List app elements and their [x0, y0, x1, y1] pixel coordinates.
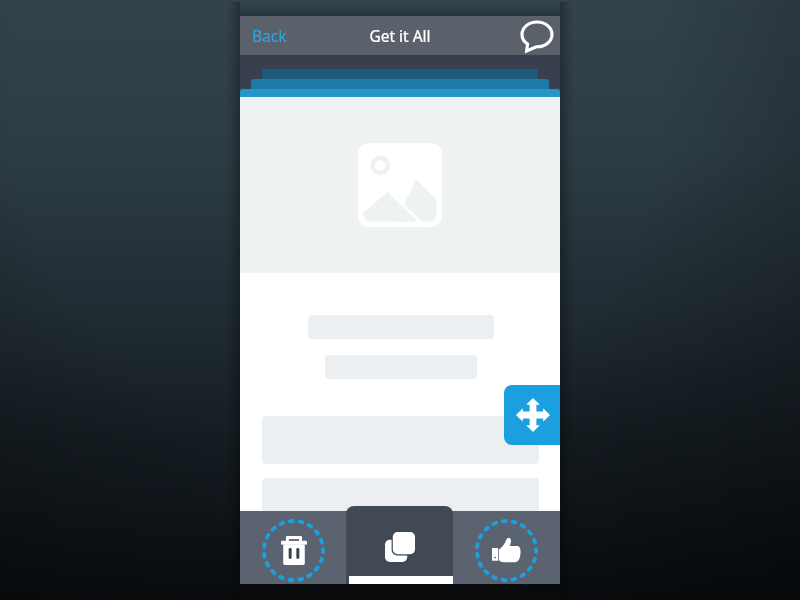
button[interactable]: Back: [240, 16, 297, 55]
button[interactable]: Copies: [346, 506, 453, 584]
staticText: Get it All: [369, 25, 431, 46]
button[interactable]: Like: [453, 511, 560, 584]
button[interactable]: Delete: [240, 511, 346, 584]
button[interactable]: Messages: [519, 18, 555, 54]
button[interactable]: Move: [504, 385, 560, 445]
staticText: Back: [252, 25, 287, 46]
